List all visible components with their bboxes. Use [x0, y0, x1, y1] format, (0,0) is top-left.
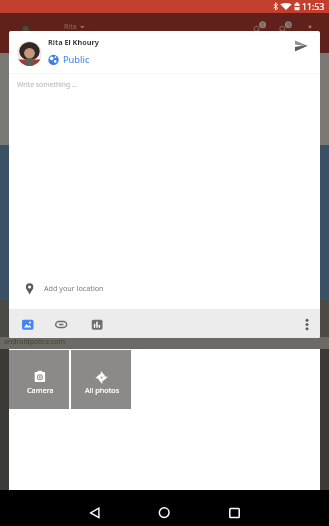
button[interactable]: [53, 318, 69, 331]
staticText: Rita: [64, 22, 77, 32]
button[interactable]: [290, 36, 314, 60]
button[interactable]: [300, 317, 314, 337]
button[interactable]: [17, 41, 42, 66]
button[interactable]: [89, 318, 103, 331]
staticText: Add your location: [44, 283, 104, 293]
button[interactable]: Camera: [9, 350, 69, 409]
staticText: Camera: [27, 385, 54, 395]
staticText: 1: [261, 21, 265, 29]
button[interactable]: [224, 496, 245, 522]
button[interactable]: Add your location: [19, 279, 139, 297]
staticText: androidpolice.com: [4, 337, 66, 347]
button[interactable]: Public: [46, 52, 101, 67]
button[interactable]: [154, 496, 175, 522]
button[interactable]: [84, 496, 105, 522]
staticText: Public: [63, 53, 90, 66]
button[interactable]: [20, 318, 34, 331]
staticText: 11:53: [302, 1, 325, 13]
button[interactable]: All photos: [71, 350, 131, 409]
staticText: All photos: [85, 385, 120, 395]
staticText: Write something ...: [17, 80, 78, 89]
staticText: 5: [287, 21, 291, 29]
staticText: Rita El Khoury: [48, 37, 99, 47]
